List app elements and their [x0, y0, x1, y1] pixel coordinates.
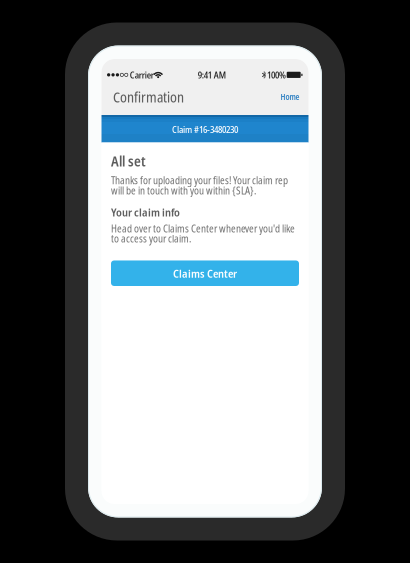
staticText: Claims Center: [173, 265, 237, 281]
staticText: Claim #16-3480230: [172, 123, 238, 136]
staticText: 9:41 AM: [198, 68, 226, 81]
staticText: Home: [280, 92, 299, 102]
button[interactable]: Claims Center: [111, 260, 299, 286]
staticText: Thanks for uploading your files! Your cl…: [111, 174, 288, 197]
staticText: 100%: [267, 68, 286, 81]
staticText: Confirmation: [113, 87, 184, 107]
staticText: Head over to Claims Center whenever you'…: [111, 222, 295, 245]
button[interactable]: Home: [276, 84, 304, 110]
staticText: Your claim info: [111, 204, 180, 220]
staticText: All set: [111, 151, 146, 171]
staticText: Carrier: [130, 68, 154, 81]
